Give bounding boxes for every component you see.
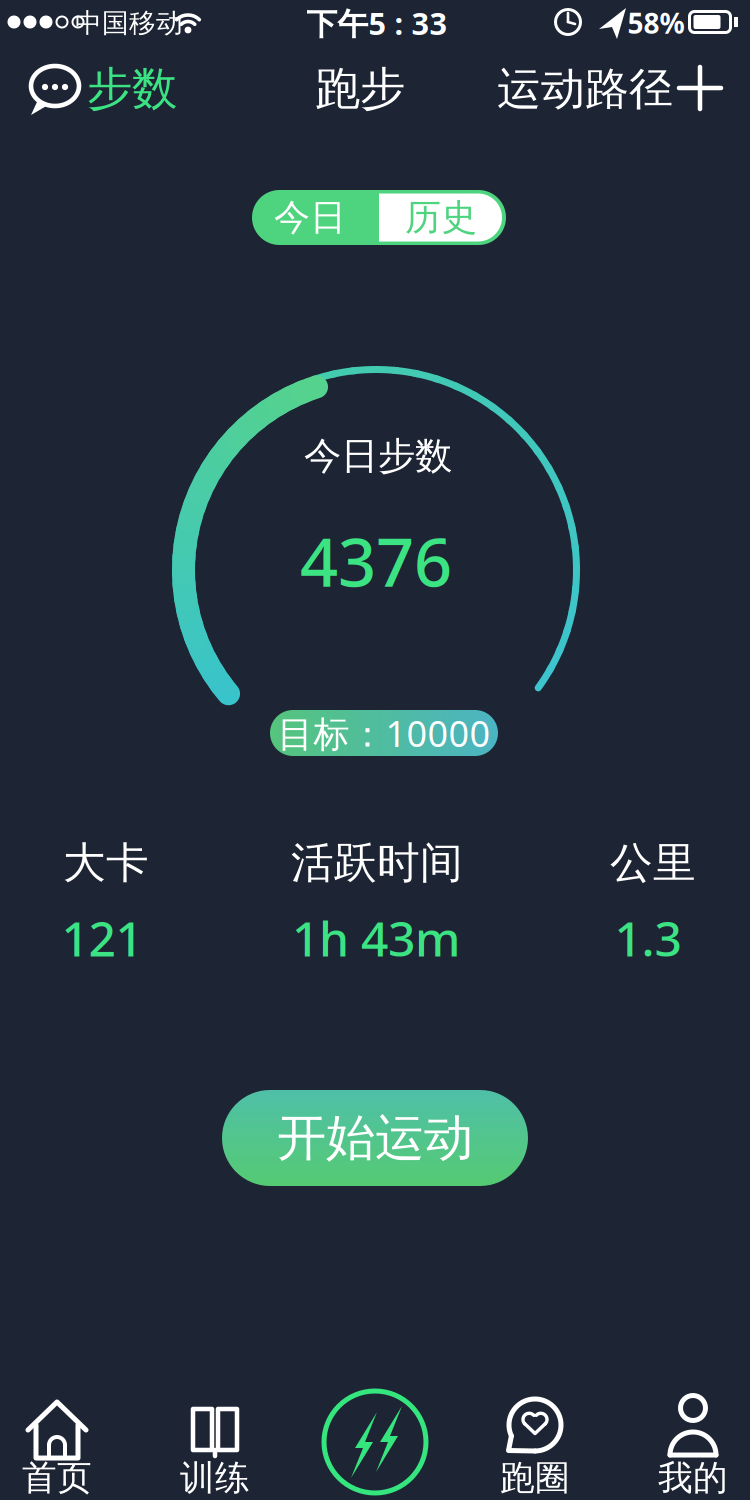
staticText: 目标：10000 [277, 709, 490, 757]
button[interactable]: 首页 [0, 1389, 115, 1500]
staticText: 今日步数 [304, 433, 452, 479]
button[interactable]: 跑步 [315, 61, 405, 117]
button[interactable]: 今日 [252, 190, 379, 245]
button[interactable]: Start workout [320, 1387, 430, 1497]
staticText: 运动路径 [497, 62, 673, 116]
button[interactable]: 开始运动 [222, 1090, 528, 1186]
staticText: 中国移动 [75, 7, 183, 39]
staticText: 跑步 [315, 61, 405, 117]
staticText: 训练 [180, 1457, 250, 1499]
button[interactable]: 跑圈 [477, 1389, 593, 1500]
staticText: 58% [627, 4, 684, 42]
staticText: 我的 [658, 1457, 728, 1499]
staticText: 121 [61, 906, 142, 970]
staticText: 跑圈 [500, 1457, 570, 1499]
staticText: 步数 [87, 61, 177, 117]
button[interactable]: 训练 [157, 1389, 273, 1500]
button[interactable]: Add [670, 58, 730, 118]
button[interactable]: 运动路径 [497, 62, 673, 116]
staticText: 活跃时间 [291, 837, 463, 889]
staticText: 今日 [274, 195, 346, 240]
staticText: 开始运动 [277, 1108, 473, 1168]
button[interactable]: 历史 [379, 190, 506, 245]
button[interactable]: Messages [20, 53, 90, 123]
staticText: 1h 43m [292, 906, 460, 970]
staticText: 公里 [610, 837, 696, 889]
staticText: 下午5 : 33 [306, 3, 447, 43]
staticText: 大卡 [63, 837, 149, 889]
button[interactable]: 步数 [87, 61, 177, 117]
staticText: 首页 [22, 1457, 92, 1499]
button[interactable]: 我的 [635, 1389, 750, 1500]
staticText: 历史 [405, 195, 477, 240]
staticText: 1.3 [614, 906, 681, 970]
staticText: 4376 [300, 517, 452, 605]
